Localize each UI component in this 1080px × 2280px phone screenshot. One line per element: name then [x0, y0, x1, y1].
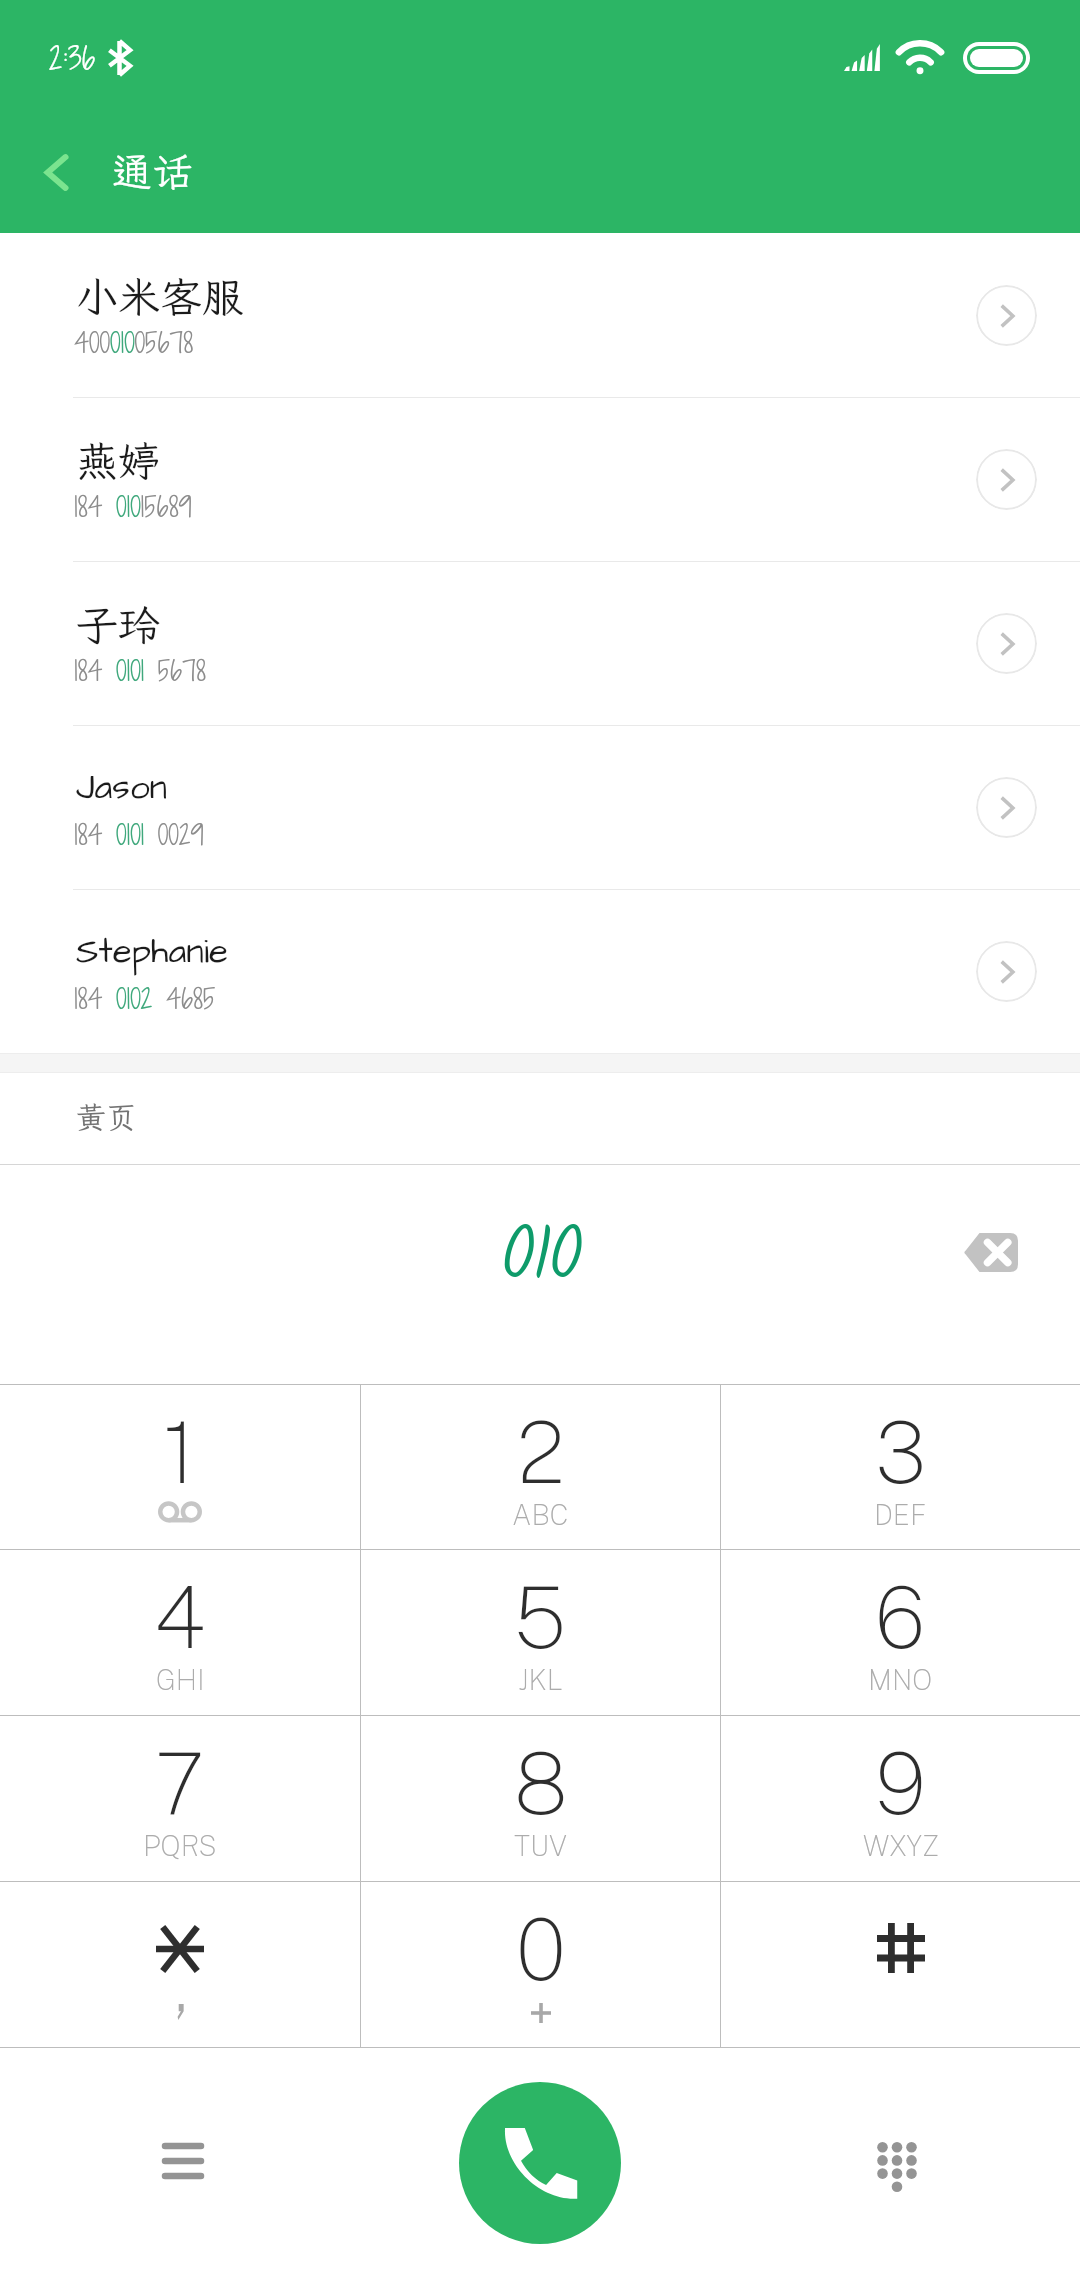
staticText: 4	[154, 1566, 206, 1667]
staticText: 0	[516, 1898, 566, 1999]
button[interactable]: 9	[721, 1716, 1080, 1881]
button[interactable]: Jason	[0, 725, 1080, 889]
staticText: 8	[514, 1732, 568, 1833]
staticText: 小米客服	[76, 269, 245, 324]
button[interactable]: Open Stephanie	[976, 941, 1037, 1002]
button[interactable]: Call	[459, 2082, 621, 2244]
button[interactable]: 4	[0, 1550, 360, 1715]
button[interactable]: 2	[361, 1385, 720, 1549]
button[interactable]: 子玲	[0, 561, 1080, 725]
staticText: 2	[517, 1401, 565, 1502]
staticText: MNO	[868, 1663, 933, 1696]
staticText: DEF	[874, 1498, 927, 1531]
button[interactable]: Open 小米客服	[976, 285, 1037, 346]
staticText: 6	[875, 1566, 926, 1667]
button[interactable]: 0	[361, 1882, 720, 2047]
button[interactable]: Open Jason	[976, 777, 1037, 838]
button[interactable]: 1	[0, 1385, 360, 1549]
button[interactable]: 8	[361, 1716, 720, 1881]
button[interactable]: 7	[0, 1716, 360, 1881]
staticText: 黄页	[76, 1097, 136, 1137]
staticText: 184 0101 0029	[74, 815, 204, 854]
button[interactable]: 燕婷	[0, 397, 1080, 561]
staticText: ABC	[512, 1498, 569, 1531]
staticText: 子玲	[76, 597, 161, 652]
staticText: 通话	[112, 145, 192, 198]
button[interactable]: Delete	[935, 1203, 1045, 1301]
staticText: 010	[500, 1197, 579, 1318]
staticText: PQRS	[143, 1829, 217, 1862]
staticText: TUV	[514, 1829, 567, 1862]
button[interactable]: 5	[361, 1550, 720, 1715]
button[interactable]: 黄页	[0, 1073, 1080, 1164]
button[interactable]: 3	[721, 1385, 1080, 1549]
button[interactable]: Open 子玲	[976, 613, 1037, 674]
staticText: Stephanie	[76, 927, 228, 976]
staticText: 燕婷	[76, 433, 161, 488]
staticText: 2:36	[49, 36, 96, 80]
button[interactable]	[0, 1882, 360, 2047]
staticText: 184 0101 5678	[74, 651, 206, 690]
staticText: 5	[514, 1566, 567, 1667]
button[interactable]: 6	[721, 1550, 1080, 1715]
staticText: 1	[163, 1401, 197, 1502]
staticText: Jason	[76, 763, 168, 812]
button[interactable]: 小米客服	[0, 233, 1080, 397]
staticText: 184 0102 4685	[74, 979, 216, 1018]
staticText: 9	[875, 1732, 926, 1833]
staticText: 7	[155, 1732, 205, 1833]
button[interactable]: Call log	[128, 2106, 238, 2216]
button[interactable]: Open 燕婷	[976, 449, 1037, 510]
button[interactable]: Dialpad	[842, 2112, 952, 2222]
button[interactable]: Stephanie	[0, 889, 1080, 1053]
staticText: WXYZ	[863, 1829, 939, 1862]
staticText: GHI	[156, 1663, 205, 1696]
staticText: 40001005678	[74, 323, 194, 362]
staticText: JKL	[518, 1663, 563, 1696]
staticText: 184 01015689	[74, 487, 192, 526]
button[interactable]: Back	[18, 134, 94, 210]
staticText: 3	[875, 1401, 927, 1502]
button[interactable]	[721, 1882, 1080, 2047]
